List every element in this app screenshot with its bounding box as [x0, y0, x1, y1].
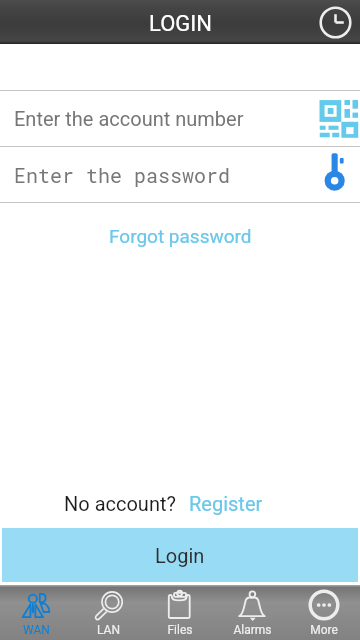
button[interactable]: Alarms — [216, 585, 288, 640]
staticText: Files — [167, 623, 193, 637]
staticText: LAN — [97, 623, 120, 637]
button[interactable]: Scan QR code — [302, 91, 360, 146]
staticText: Enter the password — [14, 162, 302, 188]
button[interactable]: WAN — [0, 585, 72, 640]
staticText: More — [310, 623, 338, 637]
staticText: No account? — [64, 492, 176, 515]
button[interactable]: Register — [189, 492, 263, 515]
button[interactable]: Enter the password — [0, 147, 360, 202]
staticText: LOGIN — [149, 11, 212, 37]
staticText: Forgot password — [109, 225, 252, 247]
button[interactable]: Clock — [316, 3, 354, 41]
staticText: Alarms — [233, 623, 272, 637]
button[interactable]: Show password key — [302, 147, 360, 202]
button[interactable]: Login — [2, 528, 358, 582]
button[interactable]: LAN — [72, 585, 144, 640]
button[interactable]: Forgot password — [109, 225, 252, 247]
button[interactable]: Files — [144, 585, 216, 640]
button[interactable]: Enter the account number — [0, 91, 360, 146]
staticText: Enter the account number — [14, 107, 302, 130]
staticText: Register — [189, 492, 263, 515]
staticText: Login — [155, 544, 205, 567]
button[interactable]: More — [288, 585, 360, 640]
staticText: WAN — [23, 623, 50, 637]
